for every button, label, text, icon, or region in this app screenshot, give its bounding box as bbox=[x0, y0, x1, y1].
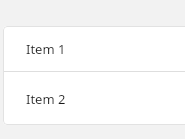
button[interactable]: Item 1 bbox=[3, 26, 185, 71]
button[interactable]: Item 2 bbox=[3, 72, 185, 125]
staticText: Item 1 bbox=[26, 40, 66, 58]
staticText: Item 2 bbox=[26, 90, 66, 108]
